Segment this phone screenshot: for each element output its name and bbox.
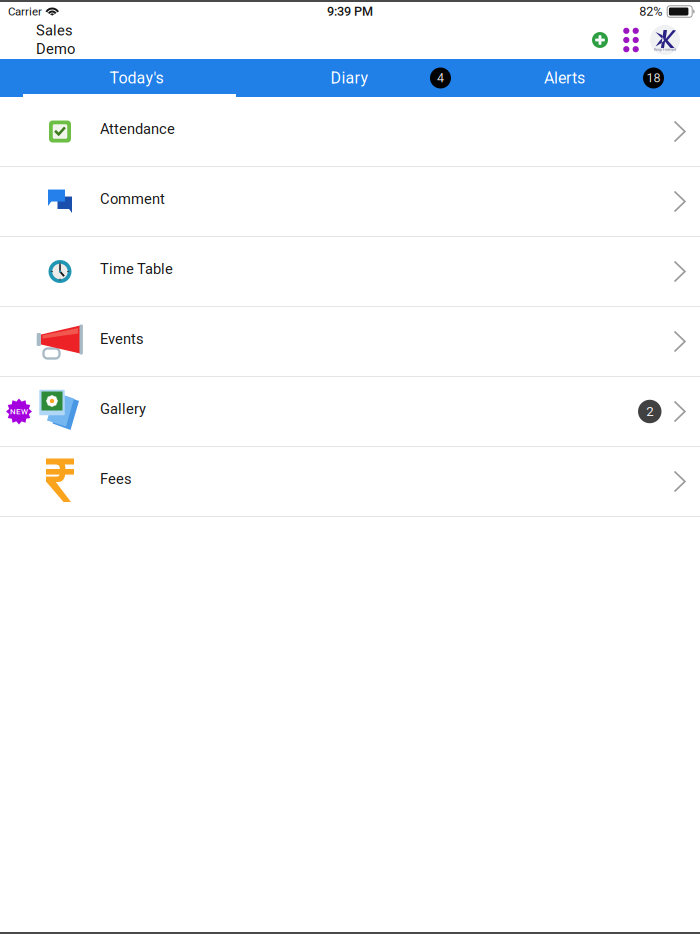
staticText: Alerts: [544, 69, 585, 87]
button[interactable]: Fees: [0, 447, 700, 517]
button[interactable]: Apps: [623, 30, 639, 50]
staticText: 4: [437, 71, 444, 85]
staticText: Fees: [100, 470, 132, 488]
staticText: Sales: [36, 22, 73, 39]
staticText: NEW: [10, 407, 28, 416]
staticText: Attendance: [100, 120, 175, 138]
button[interactable]: Profile: [650, 25, 680, 55]
button[interactable]: Attendance: [0, 97, 700, 167]
button[interactable]: Time Table: [0, 237, 700, 307]
staticText: 9:39 PM: [327, 4, 373, 19]
staticText: 18: [646, 71, 660, 85]
button[interactable]: Comment: [0, 167, 700, 237]
staticText: Events: [100, 330, 144, 348]
staticText: Gallery: [100, 400, 146, 418]
staticText: Today's: [109, 69, 163, 87]
button[interactable]: Alerts: [448, 59, 681, 97]
button[interactable]: Today's: [20, 59, 253, 97]
staticText: Comment: [100, 190, 165, 208]
staticText: 82%: [639, 4, 662, 19]
staticText: Demo: [36, 40, 75, 58]
button[interactable]: Events: [0, 307, 700, 377]
button[interactable]: Diary: [233, 59, 466, 97]
staticText: Time Table: [100, 260, 173, 278]
staticText: 2: [646, 404, 653, 419]
staticText: Keep Forward: [654, 47, 676, 52]
button[interactable]: Add: [591, 31, 609, 49]
staticText: Diary: [330, 69, 368, 87]
staticText: Carrier: [8, 5, 42, 18]
button[interactable]: NEW: [0, 377, 700, 447]
